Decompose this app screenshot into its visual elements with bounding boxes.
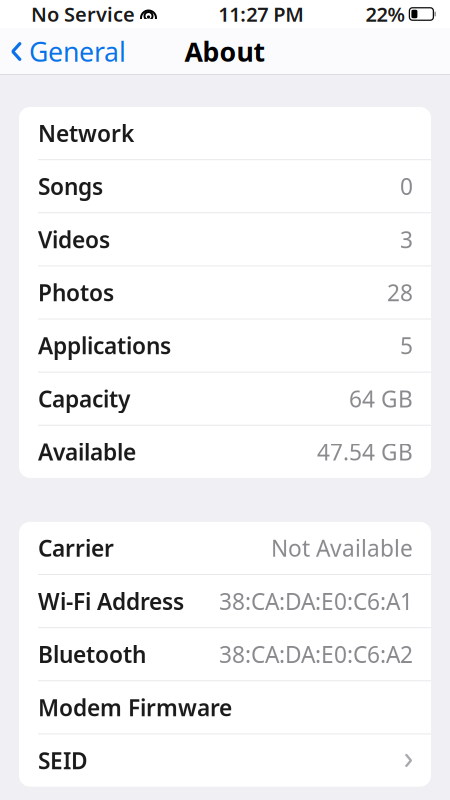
staticText: Not Available	[271, 533, 413, 563]
staticText: About	[184, 34, 265, 69]
button[interactable]: General	[0, 28, 134, 75]
staticText: 28	[387, 277, 413, 307]
staticText: Modem Firmware	[38, 692, 232, 722]
staticText: 0	[400, 171, 413, 201]
staticText: Available	[38, 437, 136, 467]
staticText: 47.54 GB	[317, 437, 413, 467]
staticText: Applications	[38, 330, 171, 361]
staticText: Carrier	[38, 533, 114, 563]
staticText: No Service	[31, 1, 135, 27]
staticText: 64 GB	[349, 384, 413, 414]
staticText: General	[29, 34, 126, 69]
staticText: 38:CA:DA:E0:C6:A1	[219, 586, 413, 616]
staticText: 22%	[365, 1, 405, 27]
staticText: SEID	[38, 745, 88, 775]
staticText: 11:27 PM	[218, 1, 304, 27]
staticText: Capacity	[38, 384, 130, 414]
staticText: 38:CA:DA:E0:C6:A2	[219, 639, 413, 669]
staticText: Network	[38, 118, 134, 148]
staticText: Songs	[38, 171, 103, 201]
staticText: Bluetooth	[38, 639, 146, 669]
staticText: 3	[400, 224, 413, 254]
staticText: Photos	[38, 277, 114, 307]
staticText: Videos	[38, 224, 110, 254]
staticText: Wi-Fi Address	[38, 586, 184, 616]
staticText: 5	[400, 330, 413, 361]
button[interactable]: SEID	[19, 734, 431, 787]
